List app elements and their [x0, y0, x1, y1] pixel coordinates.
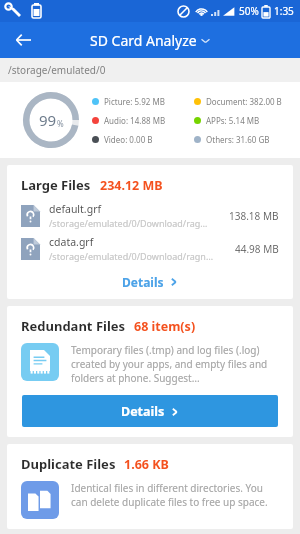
staticText: Identical files in different directories…: [71, 481, 279, 509]
staticText: Document: 382.00 B: [206, 96, 282, 107]
staticText: Duplicate Files: [21, 455, 116, 473]
staticText: 1:35: [274, 4, 294, 18]
staticText: APPs: 5.14 MB: [206, 115, 260, 126]
staticText: Details: [121, 403, 165, 420]
button[interactable]: Back: [10, 27, 36, 53]
staticText: cdata.grf: [49, 235, 94, 249]
button[interactable]: cdata.grf: [21, 235, 279, 262]
button[interactable]: /storage/emulated/0: [0, 58, 300, 82]
button[interactable]: Details: [22, 395, 278, 427]
staticText: 234.12 MB: [100, 177, 163, 194]
staticText: Details: [122, 274, 164, 290]
staticText: 138.18 MB: [229, 209, 279, 223]
staticText: /storage/emulated/0/Download/ragn…: [49, 250, 213, 262]
button[interactable]: default.grf: [21, 202, 279, 229]
staticText: 68 item(s): [134, 318, 196, 335]
staticText: SD Card Analyze: [90, 31, 197, 50]
staticText: %: [57, 118, 64, 129]
button[interactable]: SD Card Analyze: [90, 31, 211, 50]
staticText: Redundant Files: [21, 317, 126, 335]
staticText: Picture: 5.92 MB: [104, 96, 165, 107]
staticText: 1.66 KB: [124, 456, 169, 473]
staticText: Audio: 14.88 MB: [104, 115, 166, 126]
staticText: 50%: [239, 4, 259, 18]
staticText: 44.98 MB: [235, 242, 279, 256]
staticText: Others: 31.60 GB: [206, 134, 270, 145]
staticText: /storage/emulated/0: [8, 63, 106, 77]
button[interactable]: Details: [7, 269, 293, 295]
staticText: Temporary files (.tmp) and log files (.l…: [71, 343, 279, 385]
staticText: Video: 0.00 B: [104, 134, 153, 145]
staticText: /storage/emulated/0/Download/rag…: [49, 217, 208, 229]
staticText: 99: [39, 110, 57, 130]
staticText: default.grf: [49, 202, 102, 216]
staticText: Large Files: [21, 176, 91, 194]
